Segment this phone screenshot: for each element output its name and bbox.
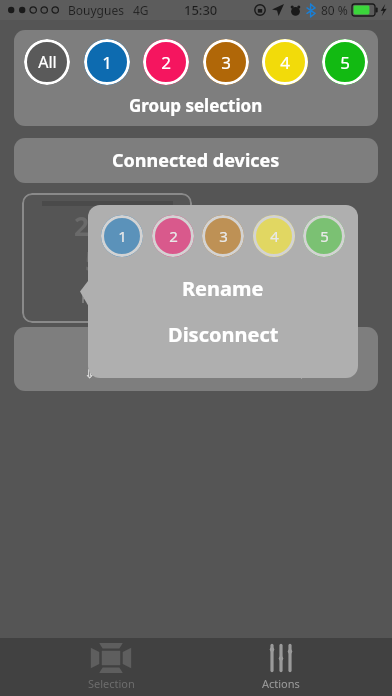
button[interactable]: 2	[152, 215, 194, 257]
button[interactable]: 3	[203, 39, 249, 85]
button[interactable]: 2	[143, 39, 189, 85]
staticText: 4	[280, 51, 290, 74]
staticText: ⇩ Pull down to scan for new devices ⇩	[85, 365, 307, 381]
staticText: 3	[221, 51, 231, 74]
staticText: 5	[340, 51, 350, 74]
button[interactable]: 1	[101, 215, 143, 257]
staticText: Disconnect	[168, 321, 279, 348]
staticText: 25.00	[74, 208, 141, 243]
button[interactable]: 4	[262, 39, 308, 85]
button[interactable]: Connected devices	[14, 138, 378, 183]
button[interactable]: 3	[202, 215, 244, 257]
staticText: 5	[320, 226, 329, 246]
staticText: 1	[102, 51, 112, 74]
staticText: 80 %	[321, 2, 348, 18]
staticText: 1	[118, 226, 127, 246]
staticText: 552	[85, 243, 130, 278]
button[interactable]: Disconnect	[88, 317, 358, 351]
staticText: 4G	[133, 2, 149, 18]
staticText: 15:30	[184, 1, 218, 19]
button[interactable]: Actions	[221, 638, 341, 696]
button[interactable]: Rename	[88, 271, 358, 305]
button[interactable]: 1	[84, 39, 130, 85]
button[interactable]: 25.00	[22, 193, 192, 323]
staticText: Rock AE	[81, 288, 133, 307]
staticText: Bouygues	[68, 2, 124, 18]
staticText: Group selection	[129, 94, 263, 117]
staticText: Selection	[88, 676, 135, 691]
staticText: 3	[219, 226, 228, 246]
button[interactable]: All	[24, 39, 70, 85]
staticText: Connected devices	[112, 148, 280, 173]
button[interactable]: Disconnected devices	[14, 327, 378, 391]
staticText: 4	[270, 226, 279, 246]
staticText: 2	[161, 51, 171, 74]
staticText: All	[38, 51, 57, 73]
staticText: 2	[169, 226, 178, 246]
button[interactable]: Selection	[51, 638, 171, 696]
button[interactable]: 5	[322, 39, 368, 85]
staticText: Actions	[262, 676, 300, 691]
button[interactable]: 4	[253, 215, 295, 257]
staticText: Disconnected devices	[100, 337, 293, 362]
staticText: Rename	[182, 275, 264, 302]
button[interactable]: 5	[303, 215, 345, 257]
